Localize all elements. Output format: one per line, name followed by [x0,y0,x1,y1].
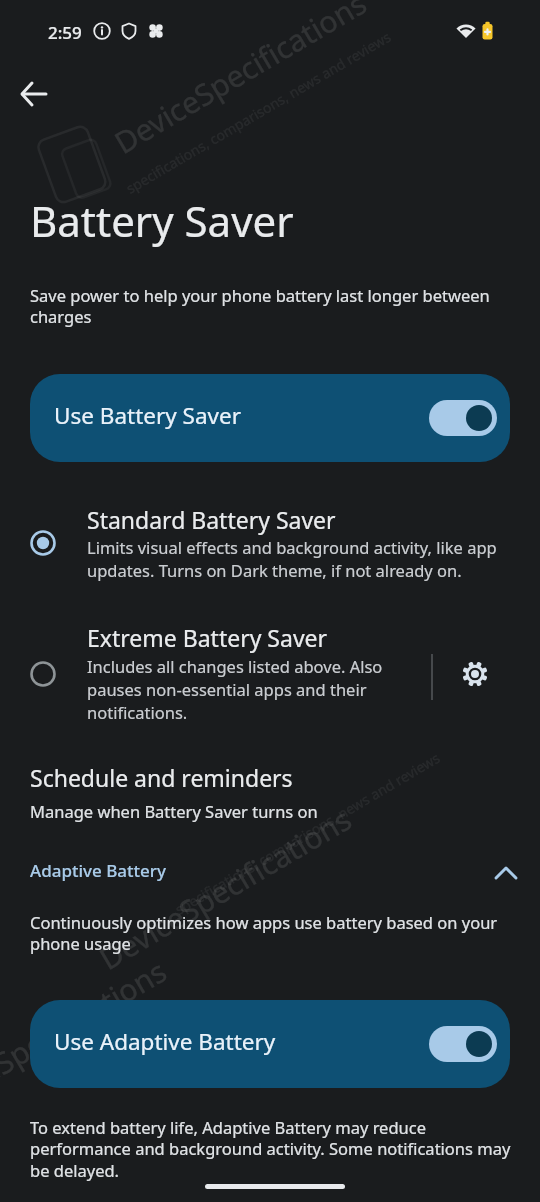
staticText: Save power to help your phone battery la… [30,284,490,328]
staticText: To extend battery life, Adaptive Battery… [30,1116,511,1182]
staticText: Continuously optimizes how apps use batt… [30,911,498,955]
staticText: specifications, comparisons, news and re… [122,27,395,198]
staticText: Use Battery Saver [54,400,241,431]
staticText: specifications, comparisons, news and re… [171,748,444,919]
staticText: Battery Saver [30,192,294,249]
button[interactable]: Use Battery Saver [30,374,510,462]
button[interactable]: Adaptive Battery [0,845,540,901]
button[interactable] [429,400,497,436]
staticText: Extreme Battery Saver [87,622,328,653]
staticText: 2:59 [48,21,82,44]
staticText: DeviceSpecifications [92,798,359,979]
staticText: Standard Battery Saver [87,504,336,535]
staticText: Use Adaptive Battery [54,1026,276,1057]
staticText: DeviceSpecifications [0,950,174,1131]
staticText: Includes all changes listed above. Also … [87,655,383,724]
staticText: Schedule and reminders [30,762,293,793]
button[interactable] [10,70,58,118]
staticText: Limits visual effects and background act… [87,536,497,582]
button[interactable] [0,616,430,736]
staticText: Adaptive Battery [30,859,166,882]
button[interactable] [451,650,499,698]
button[interactable] [429,1026,497,1062]
staticText: Manage when Battery Saver turns on [30,800,318,822]
button[interactable] [0,496,540,596]
button[interactable]: Use Adaptive Battery [30,1000,510,1088]
staticText: DeviceSpecifications [107,0,374,163]
